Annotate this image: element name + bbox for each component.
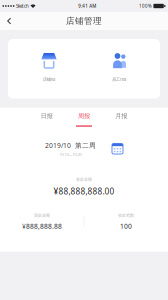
staticText: 日报 [41, 112, 53, 120]
staticText: 100 [120, 221, 132, 231]
button[interactable]: Back [0, 12, 16, 30]
button[interactable]: 日报 [28, 108, 65, 127]
button[interactable]: 周报 [65, 108, 103, 127]
staticText: 退款金额 [34, 213, 50, 218]
staticText: 2019/10 第二周 [45, 141, 96, 150]
staticText: ¥88,888,888.00 [53, 186, 114, 197]
staticText: 10.14—10.20 [59, 151, 81, 157]
staticText: 收款笔数 [118, 213, 134, 218]
button[interactable]: 店铺(5) [14, 39, 84, 99]
button[interactable]: 员工(10) [84, 39, 154, 99]
staticText: 月报 [115, 112, 127, 120]
staticText: 店铺(5) [43, 76, 55, 82]
staticText: 9:41 AM [78, 3, 96, 9]
staticText: ¥888,888.88 [22, 221, 62, 231]
staticText: Sketch [16, 3, 29, 9]
staticText: 店铺管理 [66, 16, 102, 26]
staticText: 周报 [78, 112, 90, 120]
staticText: 收款金额 [76, 177, 92, 182]
staticText: 员工(10) [112, 76, 126, 82]
button[interactable]: 月报 [103, 108, 140, 127]
button[interactable]: Choose date [112, 144, 123, 154]
staticText: 100% [139, 3, 152, 9]
